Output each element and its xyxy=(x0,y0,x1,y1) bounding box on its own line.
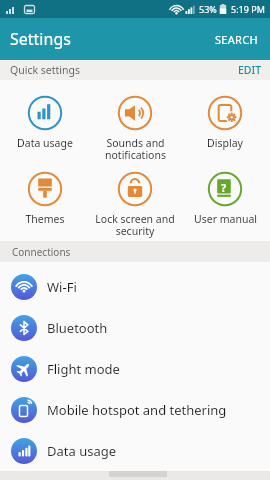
staticText: Mobile hotspot and tethering xyxy=(47,401,227,419)
button[interactable]: Data usage xyxy=(0,80,90,160)
staticText: EDIT xyxy=(238,63,262,77)
button[interactable]: ? xyxy=(180,160,270,241)
staticText: Wi-Fi xyxy=(47,278,77,296)
button[interactable]: Themes xyxy=(0,160,90,241)
staticText: SEARCH xyxy=(215,32,258,47)
button[interactable]: Mobile hotspot and tethering xyxy=(0,389,270,430)
button[interactable]: Bluetooth xyxy=(0,307,270,348)
button[interactable]: Wi-Fi xyxy=(0,266,270,307)
staticText: Sounds and notifications xyxy=(105,136,166,160)
staticText: User manual xyxy=(194,212,257,226)
button[interactable]: Sounds and notifications xyxy=(90,80,180,160)
button[interactable]: EDIT xyxy=(238,63,262,77)
button[interactable]: Display xyxy=(180,80,270,160)
staticText: Quick settings xyxy=(10,63,80,77)
staticText: Connections xyxy=(12,245,71,259)
button[interactable]: Lock screen and security xyxy=(90,160,180,241)
staticText: Themes xyxy=(25,212,65,226)
staticText: Display xyxy=(207,136,243,150)
staticText: Lock screen and security xyxy=(95,212,175,238)
staticText: Settings xyxy=(10,28,71,50)
button[interactable]: Flight mode xyxy=(0,348,270,389)
button[interactable]: Data usage xyxy=(0,430,270,471)
button[interactable]: SEARCH xyxy=(213,30,260,49)
staticText: Bluetooth xyxy=(47,319,108,337)
staticText: 5:19 PM xyxy=(231,3,265,15)
staticText: Flight mode xyxy=(47,360,120,378)
staticText: ? xyxy=(221,180,227,195)
staticText: Data usage xyxy=(17,136,73,150)
staticText: Data usage xyxy=(47,442,117,460)
staticText: 53% xyxy=(199,3,217,15)
